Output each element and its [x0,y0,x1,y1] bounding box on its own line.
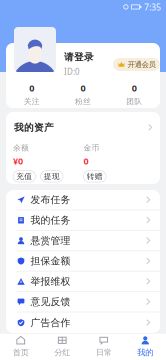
staticText: 分红 [54,347,70,358]
staticText: 0 [132,82,137,94]
staticText: 转赠 [87,171,103,181]
button[interactable]: 举报维权 [6,272,160,292]
staticText: 请登录 [64,51,94,63]
button[interactable]: 担保金额 [6,251,160,272]
button[interactable]: 0 [57,80,109,108]
staticText: 广告合作 [30,316,70,329]
staticText: 日常 [96,347,112,358]
button[interactable]: 我的 [124,334,166,360]
staticText: 7:35 [144,1,161,13]
staticText: 关注 [24,97,40,106]
staticText: 团队 [126,97,142,106]
button[interactable]: 0 [6,80,57,108]
button[interactable]: 开通会员 [113,58,160,71]
button[interactable]: 首页 [0,334,41,360]
staticText: 余额 [13,143,29,153]
button[interactable]: 充值 [13,171,35,182]
staticText: 发布任务 [30,194,70,206]
staticText: 我的资产 [14,121,54,134]
staticText: 0 [80,82,85,94]
staticText: 粉丝 [75,97,91,106]
button[interactable]: 分红 [41,334,83,360]
button[interactable]: 转赠 [83,171,106,182]
staticText: 悬赏管理 [30,234,70,247]
staticText: 提现 [44,171,60,181]
staticText: ID:0 [64,66,80,77]
staticText: 首页 [13,347,29,358]
staticText: 开通会员 [127,60,155,69]
button[interactable]: 0 [109,80,160,108]
staticText: 充值 [16,171,32,181]
button[interactable]: 我的任务 [6,210,160,231]
button[interactable]: 意见反馈 [6,292,160,312]
staticText: 举报维权 [30,275,70,288]
staticText: 意见反馈 [30,296,70,308]
button[interactable]: 我的资产 [6,112,160,143]
staticText: 担保金额 [30,255,70,267]
staticText: 我的 [137,347,153,358]
staticText: 我的任务 [30,214,70,226]
staticText: 0 [29,82,34,94]
button[interactable]: 悬赏管理 [6,231,160,251]
staticText: 金币 [83,143,99,153]
button[interactable]: 发布任务 [6,190,160,210]
button[interactable]: 提现 [40,171,63,182]
button[interactable]: 广告合作 [6,312,160,333]
staticText: ¥0 [13,155,23,167]
button[interactable]: 日常 [83,334,124,360]
staticText: 0 [83,155,88,167]
